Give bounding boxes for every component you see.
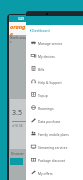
staticText: orange bbox=[10, 23, 28, 36]
button[interactable]: Family mobile plans bbox=[26, 127, 83, 140]
staticText: Manage service bbox=[38, 41, 63, 45]
button[interactable]: Help & Support bbox=[26, 75, 83, 88]
staticText: 3:29 bbox=[18, 17, 24, 21]
staticText: My devices bbox=[38, 54, 55, 58]
staticText: Dashboard bbox=[32, 28, 50, 33]
staticText: Streaming services bbox=[38, 145, 68, 149]
staticText: Roamings bbox=[38, 106, 54, 110]
button[interactable]: Data purchase bbox=[26, 114, 83, 127]
staticText: of 50 GB bbox=[12, 124, 23, 128]
staticText: Help & Support bbox=[38, 80, 62, 84]
button[interactable]: Roamings bbox=[26, 101, 83, 114]
button[interactable]: My devices bbox=[26, 49, 83, 62]
staticText: Family mobile plans bbox=[38, 132, 69, 136]
staticText: Topup bbox=[38, 93, 48, 97]
staticText: Discover bbox=[11, 152, 24, 156]
staticText: Bills bbox=[38, 67, 45, 71]
button[interactable]: My offers bbox=[26, 166, 83, 179]
staticText: My offers bbox=[38, 171, 53, 175]
staticText: Package discount bbox=[38, 158, 66, 162]
staticText: Notifications bbox=[10, 36, 28, 44]
button[interactable]: Topup bbox=[26, 88, 83, 101]
staticText: 3.5 bbox=[12, 108, 22, 118]
staticText: Data purchase bbox=[38, 119, 61, 123]
button[interactable]: Bills bbox=[26, 62, 83, 75]
button[interactable]: Manage service bbox=[26, 36, 83, 49]
button[interactable]: Dashboard bbox=[26, 26, 52, 35]
button[interactable]: Streaming services bbox=[26, 140, 83, 153]
button[interactable]: Package discount bbox=[26, 153, 83, 166]
